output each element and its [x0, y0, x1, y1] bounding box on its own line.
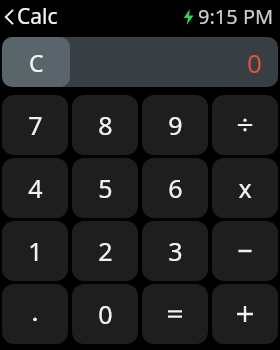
button[interactable]: Minus [212, 221, 278, 281]
staticText: 2 [98, 234, 113, 268]
staticText: C [29, 47, 44, 78]
button[interactable]: 7 [2, 95, 68, 155]
staticText: Calc [17, 2, 58, 31]
staticText: x [238, 171, 252, 205]
button[interactable]: Decimal point [2, 284, 68, 344]
button[interactable]: 0 [72, 284, 138, 344]
staticText: 3 [168, 234, 183, 268]
staticText: 1 [28, 234, 43, 268]
button[interactable]: 1 [2, 221, 68, 281]
staticText: 8 [98, 108, 113, 142]
staticText: 4 [28, 171, 43, 205]
button[interactable]: 4 [2, 158, 68, 218]
button[interactable]: 6 [142, 158, 208, 218]
staticText: 7 [28, 108, 43, 142]
staticText: 0 [98, 297, 113, 331]
staticText: 5 [98, 171, 113, 205]
button[interactable]: Plus [212, 284, 278, 344]
button[interactable]: C [2, 37, 70, 87]
button[interactable]: 8 [72, 95, 138, 155]
button[interactable]: Calc [0, 2, 64, 31]
staticText: 6 [168, 171, 183, 205]
button[interactable]: 2 [72, 221, 138, 281]
staticText: 9 [168, 108, 183, 142]
button[interactable]: Multiply [212, 158, 278, 218]
button[interactable]: 3 [142, 221, 208, 281]
button[interactable]: Divide [212, 95, 278, 155]
button[interactable]: Equals [142, 284, 208, 344]
button[interactable]: 5 [72, 158, 138, 218]
button[interactable]: 9 [142, 95, 208, 155]
staticText: 9:15 PM [198, 3, 274, 30]
staticText: 0 [247, 45, 262, 80]
